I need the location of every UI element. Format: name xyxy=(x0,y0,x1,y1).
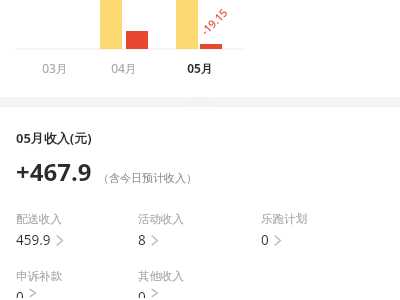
staticText: 0 xyxy=(138,288,146,298)
staticText: 0 xyxy=(261,231,269,249)
staticText: 乐跑计划 xyxy=(261,212,307,226)
staticText: 8 xyxy=(138,231,146,249)
staticText: 0 xyxy=(16,288,24,298)
staticText: -19.15 xyxy=(197,5,231,38)
staticText: 其他收入 xyxy=(138,269,184,283)
staticText: 04月 xyxy=(104,60,144,76)
staticText: 05月收入(元) xyxy=(16,129,92,147)
staticText: +467.9 xyxy=(16,155,92,188)
staticText: 03月 xyxy=(35,60,75,76)
button[interactable]: 其他收入 xyxy=(138,267,261,300)
button[interactable]: 申诉补款 xyxy=(16,267,138,300)
staticText: （含今日预计收入） xyxy=(98,171,197,185)
staticText: 05月 xyxy=(180,60,220,76)
button[interactable]: 活动收入 xyxy=(138,210,261,251)
button[interactable]: 配送收入 xyxy=(16,210,138,251)
staticText: 459.9 xyxy=(16,231,51,249)
button[interactable]: 乐跑计划 xyxy=(261,210,384,251)
staticText: 配送收入 xyxy=(16,212,62,226)
staticText: 活动收入 xyxy=(138,212,184,226)
staticText: 申诉补款 xyxy=(16,269,62,283)
